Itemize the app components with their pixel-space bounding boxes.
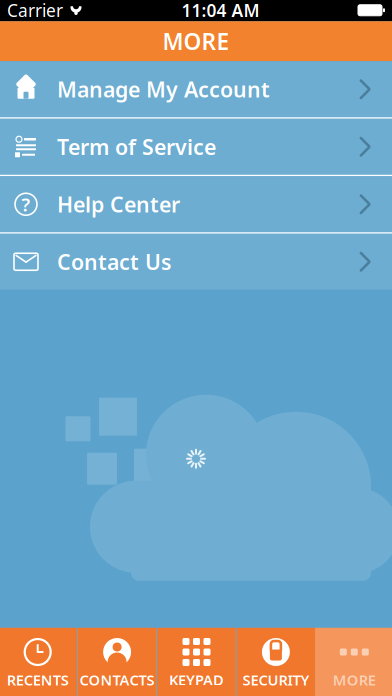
- staticText: MORE: [162, 26, 229, 56]
- button[interactable]: Contacts: [78, 628, 156, 696]
- staticText: 11:04 AM: [181, 0, 259, 22]
- button[interactable]: Term of Service: [0, 119, 392, 175]
- button[interactable]: Manage My Account: [0, 61, 392, 117]
- button[interactable]: Security: [237, 628, 315, 696]
- staticText: Term of Service: [57, 133, 216, 161]
- button[interactable]: ?: [0, 176, 392, 232]
- button[interactable]: More: [315, 628, 392, 696]
- staticText: Contact Us: [57, 248, 172, 276]
- staticText: Help Center: [57, 190, 180, 218]
- staticText: KEYPAD: [169, 670, 224, 689]
- staticText: SECURITY: [242, 670, 309, 689]
- staticText: CONTACTS: [80, 670, 155, 689]
- staticText: Manage My Account: [57, 75, 270, 103]
- staticText: RECENTS: [7, 670, 69, 689]
- staticText: MORE: [333, 670, 376, 689]
- staticText: ?: [21, 192, 30, 217]
- staticText: Carrier: [7, 0, 63, 22]
- button[interactable]: Keypad: [157, 628, 236, 696]
- button[interactable]: Recents: [0, 628, 77, 696]
- button[interactable]: Contact Us: [0, 234, 392, 290]
